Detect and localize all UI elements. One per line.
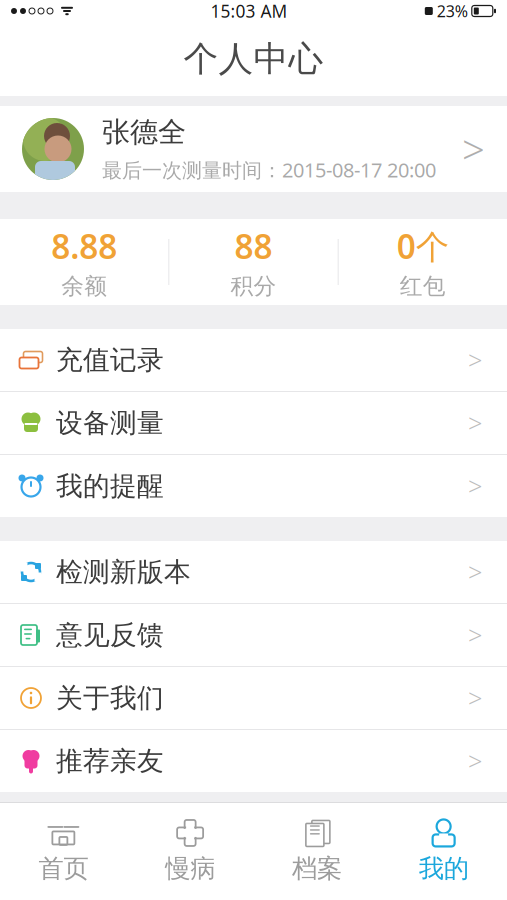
staticText: 0个: [397, 224, 449, 268]
staticText: 88: [234, 224, 272, 268]
staticText: >: [468, 406, 482, 440]
staticText: 检测新版本: [56, 556, 191, 588]
staticText: 推荐亲友: [56, 745, 164, 777]
button[interactable]: 8.88: [0, 224, 168, 300]
staticText: 个人中心: [183, 38, 323, 80]
staticText: 首页: [38, 853, 88, 884]
staticText: 关于我们: [56, 682, 164, 714]
staticText: 8.88: [51, 224, 117, 268]
button[interactable]: 0个: [339, 224, 507, 300]
button[interactable]: 关于我们: [0, 667, 507, 730]
staticText: 档案: [292, 853, 342, 884]
staticText: 我的提醒: [56, 470, 164, 502]
button[interactable]: 检测新版本: [0, 541, 507, 604]
button[interactable]: 慢病: [127, 803, 254, 900]
staticText: 设备测量: [56, 407, 164, 439]
staticText: >: [462, 122, 485, 175]
staticText: 最后一次测量时间：2015-08-17 20:00: [102, 156, 436, 183]
staticText: 张德全: [102, 115, 186, 149]
staticText: 我的: [419, 853, 469, 884]
staticText: 红包: [400, 272, 446, 300]
button[interactable]: 张德全: [0, 106, 507, 192]
staticText: 余额: [61, 272, 107, 300]
button[interactable]: 设备测量: [0, 392, 507, 455]
staticText: >: [468, 681, 482, 715]
staticText: 慢病: [165, 853, 215, 884]
button[interactable]: 推荐亲友: [0, 730, 507, 792]
staticText: 23%: [437, 0, 468, 22]
staticText: >: [468, 618, 482, 652]
staticText: 15:03 AM: [210, 0, 287, 22]
button[interactable]: 档案: [253, 803, 380, 900]
staticText: >: [468, 343, 482, 377]
button[interactable]: 88: [169, 224, 338, 300]
staticText: 积分: [230, 272, 276, 300]
staticText: >: [468, 469, 482, 503]
staticText: >: [468, 555, 482, 589]
staticText: 意见反馈: [56, 619, 164, 651]
button[interactable]: 意见反馈: [0, 604, 507, 667]
button[interactable]: 我的提醒: [0, 455, 507, 517]
button[interactable]: 首页: [0, 803, 127, 900]
staticText: >: [468, 744, 482, 778]
button[interactable]: 我的: [380, 803, 507, 900]
staticText: 充值记录: [56, 344, 164, 376]
button[interactable]: 充值记录: [0, 329, 507, 392]
